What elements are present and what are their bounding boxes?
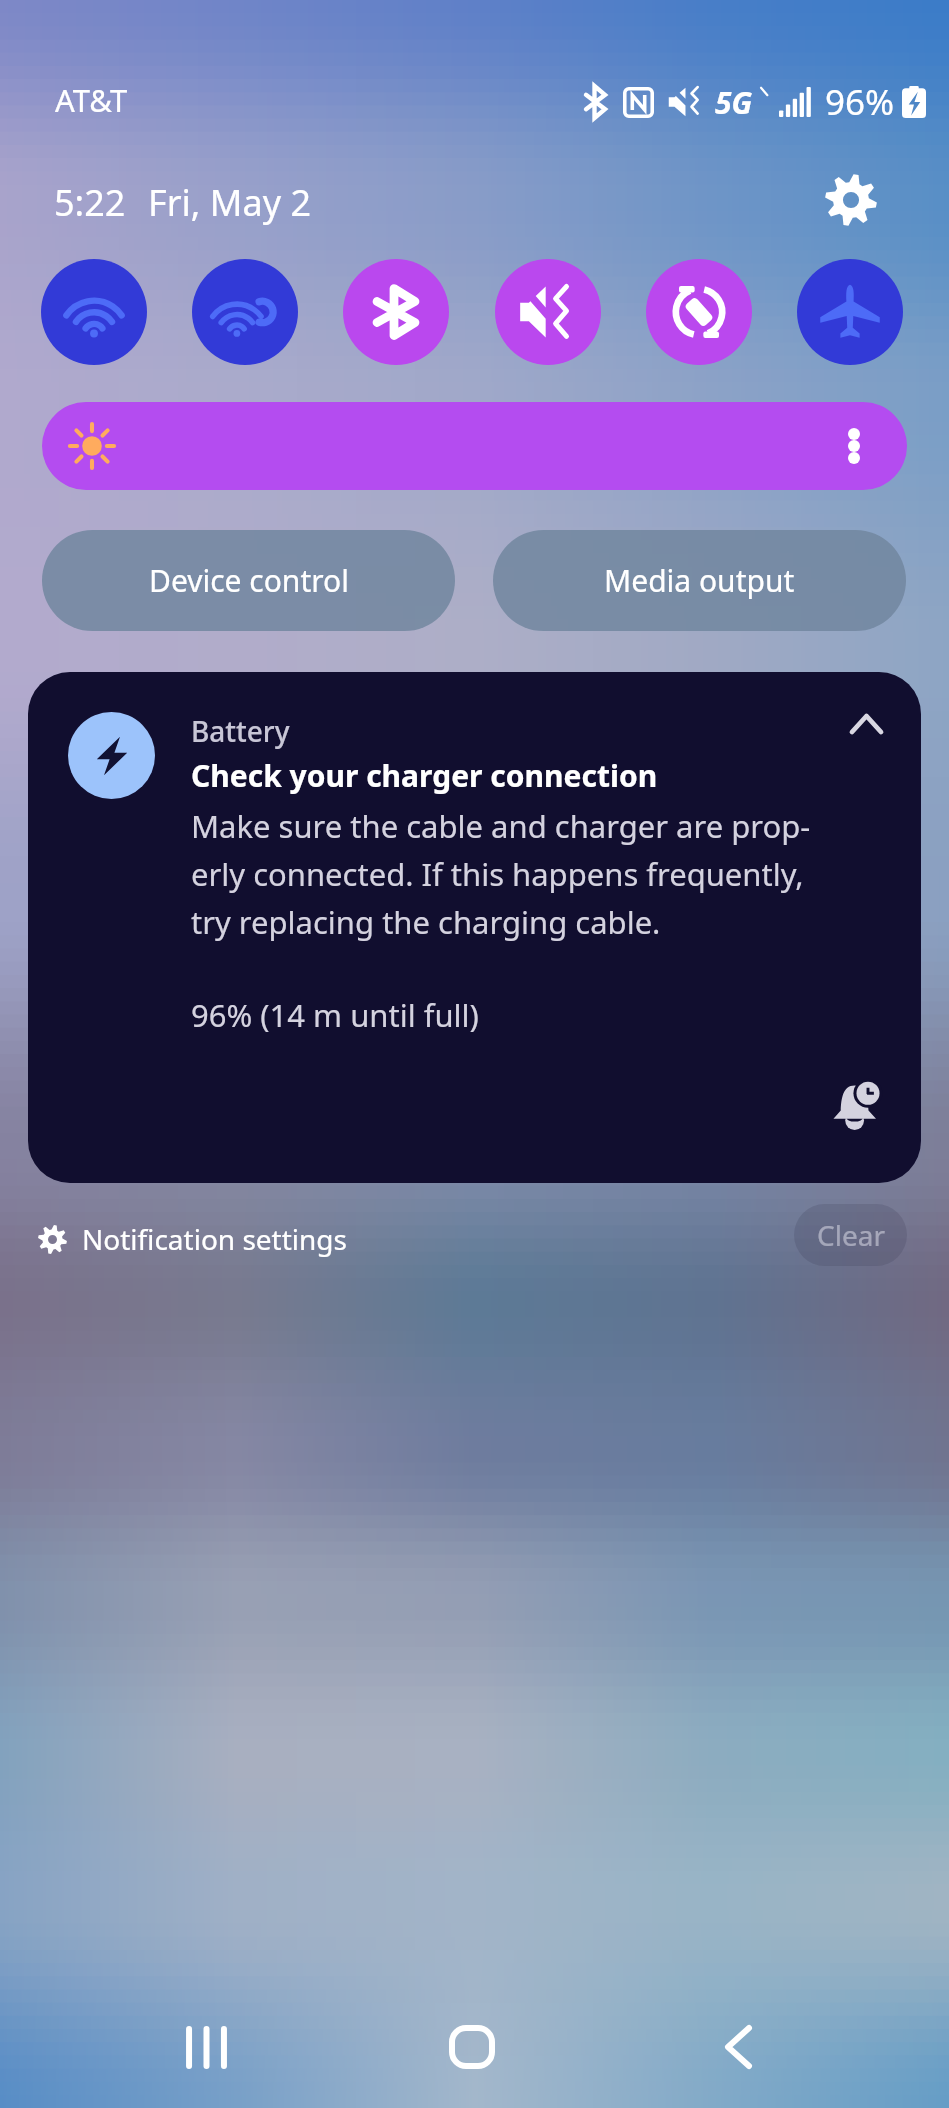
button[interactable]: Home [422, 1997, 522, 2097]
button[interactable]: Settings [818, 167, 884, 233]
staticText: Notification settings [82, 1220, 347, 1258]
button[interactable]: Recents [156, 1997, 256, 2097]
staticText: Device control [149, 560, 349, 601]
button[interactable]: Back [688, 1997, 788, 2097]
button[interactable]: Notification snoozed [812, 1062, 900, 1150]
staticText: Check your charger connection [191, 755, 658, 796]
staticText: Fri, May 2 [148, 178, 312, 227]
button[interactable]: Collapse [828, 686, 904, 762]
button[interactable]: Notification settings [38, 1208, 347, 1270]
staticText: Make sure the cable and charger are prop… [191, 805, 811, 847]
button[interactable]: Wi-Fi calling [192, 259, 298, 365]
button[interactable]: Clear [794, 1204, 907, 1266]
button[interactable]: Battery [28, 672, 921, 1183]
button[interactable]: Mute [495, 259, 601, 365]
staticText: try replacing the charging cable. [191, 901, 661, 943]
staticText: Battery [191, 712, 290, 750]
button[interactable]: Airplane mode [797, 259, 903, 365]
staticText: AT&T [55, 79, 128, 121]
button[interactable]: Auto rotate [646, 259, 752, 365]
staticText: Media output [604, 560, 795, 601]
button[interactable]: Device control [42, 530, 455, 631]
button[interactable]: Media output [493, 530, 906, 631]
button[interactable]: Brightness [42, 402, 907, 490]
staticText: 96% [825, 78, 895, 126]
staticText: erly connected. If this happens frequent… [191, 853, 804, 895]
staticText: 96% (14 m until full) [191, 994, 479, 1036]
staticText: 5:22 [54, 178, 126, 227]
staticText: 5G [715, 82, 753, 123]
staticText: Clear [817, 1216, 885, 1254]
button[interactable]: Wi-Fi [41, 259, 147, 365]
button[interactable]: Bluetooth [343, 259, 449, 365]
